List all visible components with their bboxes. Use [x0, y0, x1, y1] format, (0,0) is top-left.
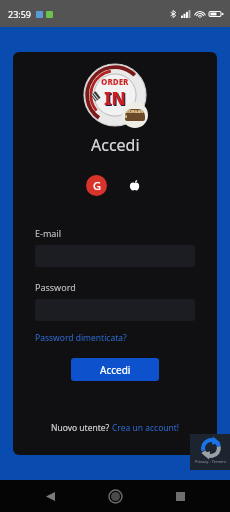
staticText: Crea un account! [112, 422, 180, 434]
button[interactable]: Accedi con Apple [124, 175, 145, 196]
button[interactable]: App recenti [165, 481, 195, 511]
staticText: Privacy - Termini [195, 459, 226, 464]
staticText: E-mail [35, 227, 62, 239]
staticText: MORGAN'S [125, 109, 145, 119]
staticText: IN [104, 87, 126, 110]
staticText: Password [35, 281, 76, 293]
button[interactable]: Accedi [71, 358, 159, 381]
button[interactable]: Password dimenticata? [35, 332, 127, 344]
button[interactable]: reCAPTCHA [190, 434, 230, 470]
button[interactable]: Crea un account! [112, 422, 180, 434]
staticText: Accedi [100, 363, 131, 377]
staticText: Accedi [91, 134, 140, 156]
staticText: Nuovo utente? [51, 422, 112, 434]
button[interactable]: Indietro [35, 481, 65, 511]
button[interactable]: Home [100, 481, 130, 511]
staticText: Password dimenticata? [35, 332, 127, 344]
staticText: 23:59 [8, 8, 32, 20]
button[interactable]: Accedi con Google [86, 175, 107, 196]
staticText: IN [105, 88, 127, 111]
staticText: G [93, 178, 101, 193]
staticText: ORDER [101, 76, 129, 87]
